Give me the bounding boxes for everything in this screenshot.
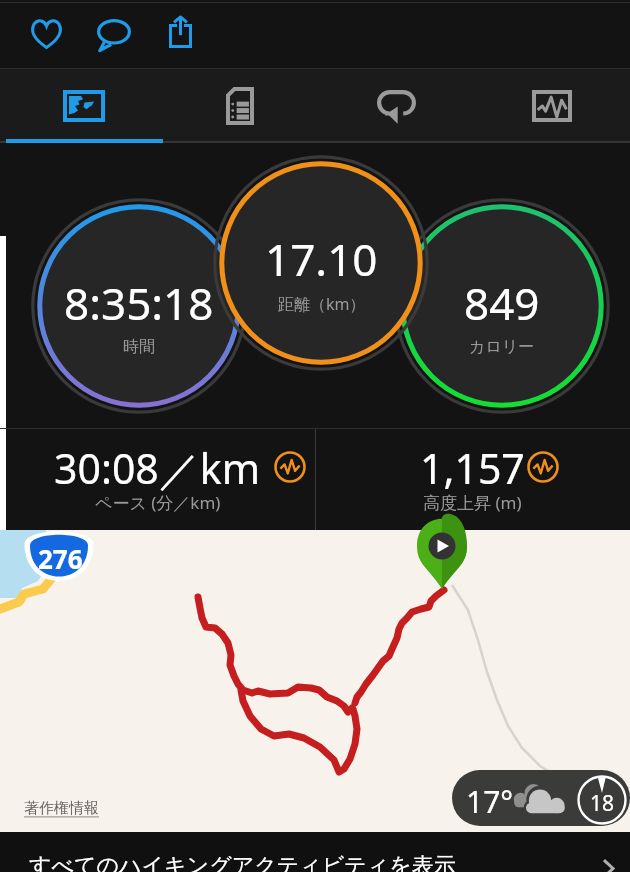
button[interactable]: Comment [93, 14, 134, 55]
staticText: 時間 [123, 337, 155, 357]
button[interactable]: 30:08／km [0, 428, 315, 531]
button[interactable]: Route map [0, 530, 630, 832]
staticText: ペース (分／km) [95, 491, 221, 514]
staticText: 著作権情報 [24, 799, 99, 818]
button[interactable]: カロリー [394, 198, 610, 414]
button[interactable]: Laps [318, 68, 474, 143]
staticText: 17.10 [265, 229, 378, 289]
staticText: カロリー [469, 337, 535, 357]
button[interactable]: Charts [474, 68, 630, 143]
staticText: 1,157 [420, 440, 525, 496]
other: Show all [602, 858, 615, 872]
button[interactable]: Details [162, 68, 318, 143]
button[interactable]: Weather [452, 770, 630, 826]
staticText: 30:08／km [54, 440, 261, 496]
staticText: 8:35:18 [64, 273, 214, 333]
staticText: すべてのハイキングアクティビティを表示 [29, 852, 456, 872]
button[interactable]: Share [160, 11, 201, 52]
staticText: 849 [464, 273, 540, 333]
button[interactable]: 時間 [31, 198, 247, 414]
staticText: 17° [466, 781, 514, 822]
button[interactable]: Map [6, 68, 162, 143]
staticText: 18 [590, 789, 615, 818]
button[interactable]: 1,157 [315, 428, 630, 531]
staticText: 高度上昇 (m) [423, 491, 522, 514]
staticText: 276 [38, 541, 83, 576]
button[interactable]: 距離（km） [213, 155, 429, 371]
button[interactable]: Like [26, 13, 67, 54]
staticText: 距離（km） [278, 293, 366, 315]
button[interactable]: すべてのハイキングアクティビティを表示 [0, 832, 630, 872]
